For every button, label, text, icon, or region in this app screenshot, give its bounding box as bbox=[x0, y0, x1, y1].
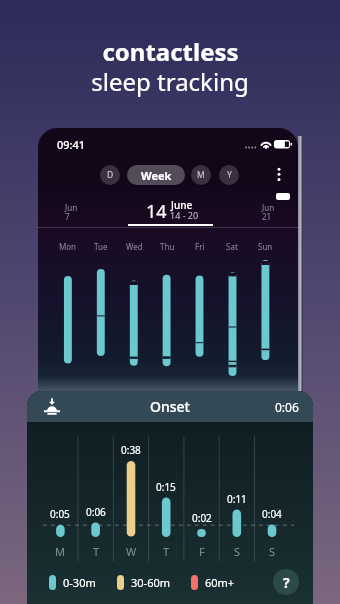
staticText: Jun bbox=[262, 202, 275, 213]
staticText: M bbox=[55, 544, 65, 559]
staticText: 0-30m bbox=[63, 575, 96, 590]
staticText: June bbox=[171, 198, 193, 212]
button[interactable]: Help bbox=[273, 569, 299, 595]
staticText: 14 - 20 bbox=[170, 209, 199, 221]
staticText: Wed bbox=[126, 241, 143, 252]
staticText: 14 bbox=[146, 199, 167, 224]
button[interactable]: 30-60m bbox=[117, 571, 170, 594]
staticText: sleep tracking bbox=[91, 65, 249, 98]
staticText: 0:11 bbox=[227, 492, 247, 506]
staticText: Tue bbox=[94, 241, 108, 252]
staticText: 0:02 bbox=[192, 511, 212, 525]
staticText: 0:06 bbox=[275, 399, 299, 415]
staticText: Sat bbox=[226, 241, 238, 252]
staticText: S bbox=[269, 544, 276, 559]
button[interactable]: More options bbox=[268, 163, 290, 185]
staticText: 60m+ bbox=[205, 575, 235, 590]
staticText: Y bbox=[227, 169, 232, 181]
button[interactable]: 60m+ bbox=[191, 571, 235, 594]
button[interactable]: M bbox=[191, 165, 211, 185]
staticText: Mon bbox=[59, 241, 77, 252]
staticText: 0:38 bbox=[121, 443, 141, 457]
staticText: Onset bbox=[150, 397, 190, 416]
staticText: W bbox=[126, 544, 137, 559]
staticText: Jun bbox=[65, 202, 78, 213]
staticText: 0:06 bbox=[86, 505, 106, 519]
staticText: ? bbox=[283, 573, 290, 592]
staticText: M bbox=[197, 169, 205, 181]
staticText: Sun bbox=[258, 241, 273, 252]
staticText: Fri bbox=[195, 241, 205, 252]
staticText: Thu bbox=[160, 241, 175, 252]
staticText: Week bbox=[141, 168, 172, 183]
button[interactable]: Sleep onset bbox=[39, 394, 65, 420]
staticText: 0:15 bbox=[156, 480, 176, 494]
staticText: contactless bbox=[102, 35, 239, 68]
staticText: 21 bbox=[262, 211, 272, 222]
staticText: 7 bbox=[65, 211, 70, 222]
button[interactable]: D bbox=[100, 165, 120, 185]
button[interactable]: 0-30m bbox=[49, 571, 96, 594]
staticText: 30-60m bbox=[131, 575, 170, 590]
staticText: T bbox=[163, 544, 170, 559]
staticText: 0:04 bbox=[262, 507, 282, 521]
staticText: D bbox=[107, 169, 114, 181]
staticText: 0:05 bbox=[50, 507, 70, 521]
button[interactable]: Y bbox=[219, 165, 239, 185]
staticText: S bbox=[234, 544, 241, 559]
staticText: 09:41 bbox=[57, 137, 86, 152]
staticText: F bbox=[199, 544, 205, 559]
staticText: T bbox=[93, 544, 100, 559]
button[interactable]: Week bbox=[127, 165, 185, 185]
